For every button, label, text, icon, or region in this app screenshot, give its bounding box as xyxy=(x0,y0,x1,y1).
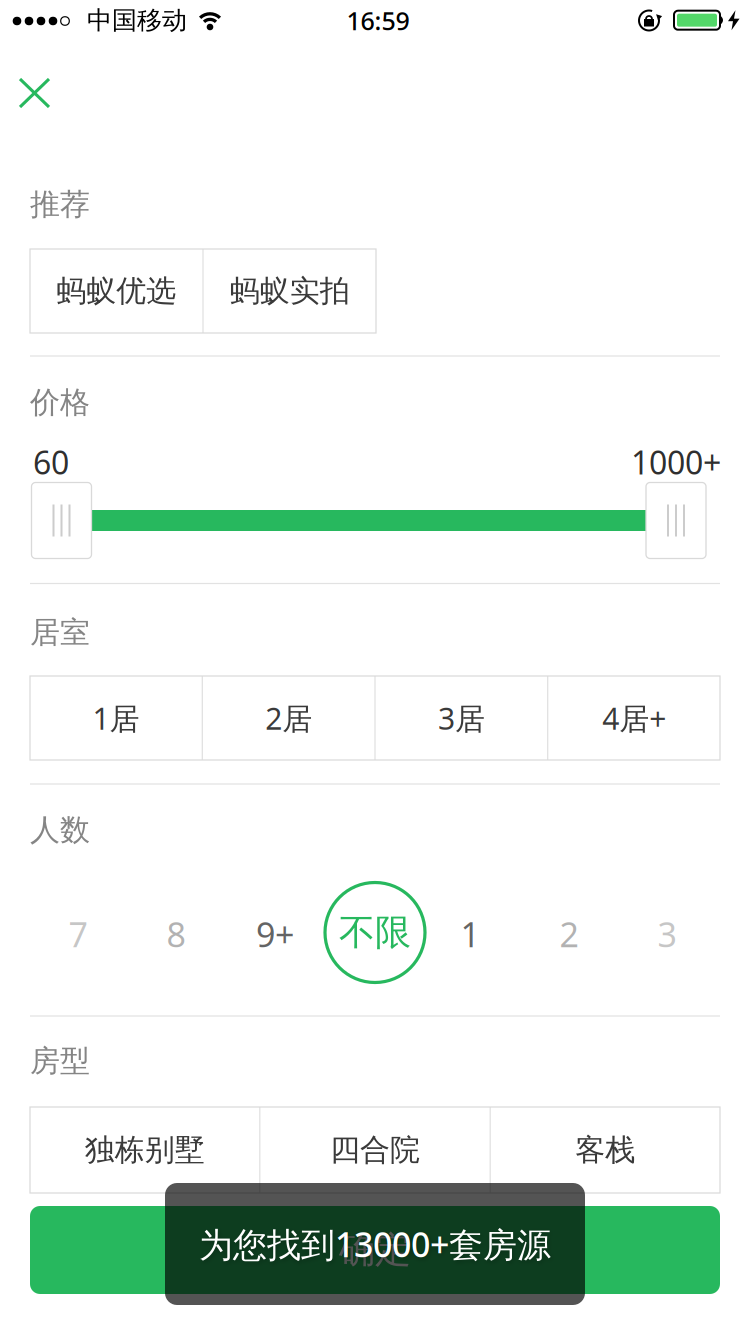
staticText: 2居 xyxy=(265,698,312,738)
button[interactable]: 1 xyxy=(430,894,510,974)
staticText: 3居 xyxy=(438,698,485,738)
staticText: 3 xyxy=(657,911,676,957)
staticText: 客栈 xyxy=(575,1131,635,1169)
button[interactable]: 四合院 xyxy=(260,1107,490,1193)
staticText: 1000+ xyxy=(631,440,721,484)
button[interactable]: 3居 xyxy=(375,676,547,760)
button[interactable]: 4居+ xyxy=(548,676,720,760)
staticText: 价格 xyxy=(30,384,90,421)
staticText: 为您找到13000+套房源 xyxy=(199,1221,551,1267)
button[interactable]: 1居 xyxy=(30,676,202,760)
button[interactable]: 关闭 xyxy=(6,65,63,121)
button[interactable]: 3 xyxy=(627,894,707,974)
button[interactable]: 9+ xyxy=(235,894,315,974)
button[interactable]: 不限 xyxy=(325,882,425,982)
staticText: 2 xyxy=(559,911,578,957)
staticText: 4居+ xyxy=(602,698,666,738)
staticText: 中国移动 xyxy=(87,5,187,36)
button[interactable]: 确定 xyxy=(30,1206,720,1294)
staticText: 推荐 xyxy=(30,186,90,223)
staticText: 四合院 xyxy=(330,1131,420,1169)
staticText: 60 xyxy=(33,440,69,484)
button[interactable]: 蚂蚁实拍 xyxy=(203,249,376,333)
button[interactable]: 蚂蚁优选 xyxy=(30,249,202,333)
staticText: 8 xyxy=(166,911,185,957)
staticText: 房型 xyxy=(30,1042,90,1080)
button[interactable]: 价格滑块 xyxy=(31,482,91,558)
staticText: 16:59 xyxy=(346,3,409,37)
staticText: 不限 xyxy=(339,910,411,955)
staticText: 蚂蚁实拍 xyxy=(230,272,350,310)
staticText: 蚂蚁优选 xyxy=(56,272,176,310)
staticText: 独栋别墅 xyxy=(85,1131,205,1169)
button[interactable]: 2 xyxy=(529,894,609,974)
staticText: 1 xyxy=(460,911,479,957)
staticText: 居室 xyxy=(30,614,90,651)
staticText: 1居 xyxy=(92,698,139,738)
button[interactable]: 8 xyxy=(136,894,216,974)
button[interactable]: 2居 xyxy=(203,676,375,760)
button[interactable]: 客栈 xyxy=(491,1107,720,1193)
staticText: 7 xyxy=(68,911,87,957)
button[interactable]: 价格滑块 xyxy=(646,482,706,558)
button[interactable]: 独栋别墅 xyxy=(30,1107,259,1193)
staticText: 人数 xyxy=(30,811,90,849)
button[interactable]: 7 xyxy=(38,894,118,974)
staticText: 9+ xyxy=(256,911,294,957)
staticText: 确定 xyxy=(339,1227,411,1273)
